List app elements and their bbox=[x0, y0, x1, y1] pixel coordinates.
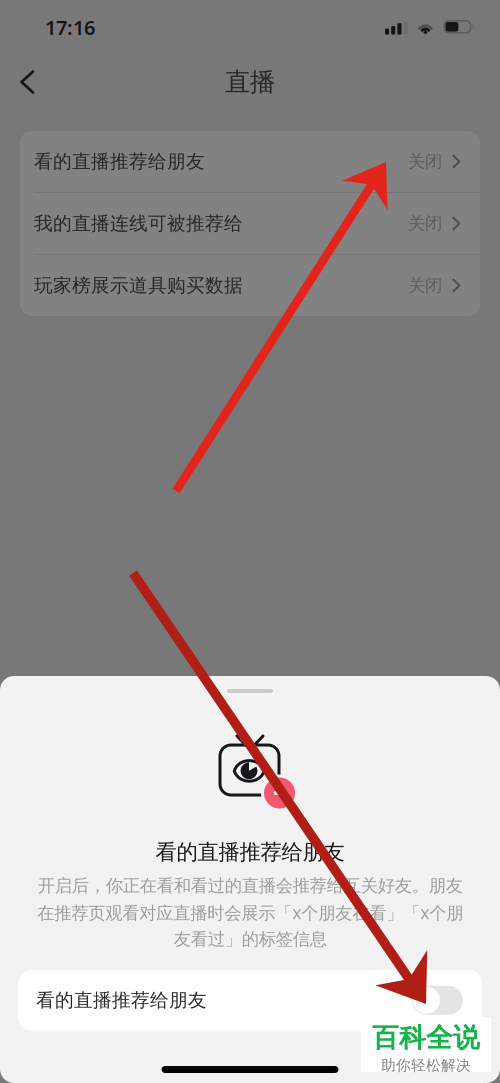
button[interactable]: 看的直播推荐给朋友 bbox=[20, 131, 480, 192]
staticText: 关闭 bbox=[408, 275, 442, 296]
staticText: 助你轻松解决 bbox=[381, 1056, 471, 1074]
staticText: 看的直播推荐给朋友 bbox=[36, 989, 207, 1012]
button[interactable]: Back bbox=[0, 59, 53, 104]
button[interactable]: 看的直播推荐给朋友 bbox=[18, 970, 482, 1031]
staticText: 我的直播连线可被推荐给 bbox=[34, 212, 243, 235]
button[interactable]: 玩家榜展示道具购买数据 bbox=[20, 255, 480, 316]
staticText: 看的直播推荐给朋友 bbox=[155, 839, 344, 865]
staticText: 17:16 bbox=[45, 14, 95, 41]
staticText: 关闭 bbox=[408, 151, 442, 172]
button[interactable]: 我的直播连线可被推荐给 bbox=[20, 193, 480, 254]
staticText: 开启后，你正在看和看过的直播会推荐给互关好友。朋友 在推荐页观看对应直播时会展示… bbox=[37, 875, 463, 950]
staticText: 直播 bbox=[225, 66, 275, 97]
staticText: 看的直播推荐给朋友 bbox=[34, 150, 205, 173]
staticText: 关闭 bbox=[408, 213, 442, 234]
staticText: 百科全说 bbox=[372, 1022, 480, 1054]
staticText: 玩家榜展示道具购买数据 bbox=[34, 274, 243, 297]
